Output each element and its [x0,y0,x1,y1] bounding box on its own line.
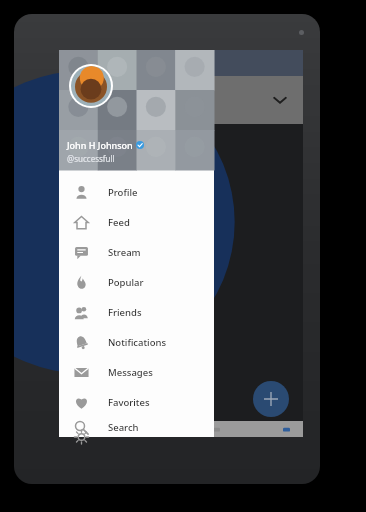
button[interactable]: Expand [267,87,293,113]
staticText: Favorites [108,396,150,409]
staticText: John H Johnson [67,139,133,151]
staticText: Feed [108,216,130,229]
button[interactable]: Feed [59,207,214,237]
staticText: Friends [108,306,142,319]
button[interactable]: Tab 3 [211,424,221,434]
button[interactable]: Popular [59,267,214,297]
button[interactable]: Stream [59,237,214,267]
button[interactable]: Messages [59,357,214,387]
button[interactable]: Favorites [59,387,214,417]
staticText: Messages [108,366,153,379]
button[interactable]: Add [253,381,289,417]
button[interactable]: Profile [59,177,214,207]
staticText: Popular [108,276,144,289]
staticText: Notifications [108,336,167,349]
staticText: Search [108,421,139,434]
staticText: Stream [108,246,141,259]
button[interactable]: Tab 4 [281,424,291,434]
button[interactable]: Profile picture [69,64,113,108]
button[interactable]: Notifications [59,327,214,357]
button[interactable]: Search [59,417,214,437]
staticText: Profile [108,186,138,199]
staticText: @successfull [67,153,115,164]
button[interactable]: Friends [59,297,214,327]
button[interactable]: Tab 1 [71,424,81,434]
